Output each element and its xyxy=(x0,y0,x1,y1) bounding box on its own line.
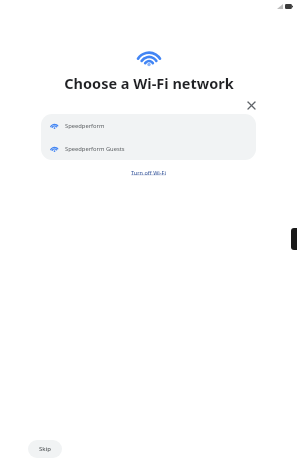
staticText: Turn off Wi-Fi xyxy=(131,169,166,176)
staticText: Speedperform Guests xyxy=(65,145,125,153)
button[interactable]: Turn off Wi-Fi xyxy=(125,167,172,178)
button[interactable]: Speedperform xyxy=(41,114,256,137)
staticText: Skip xyxy=(39,445,51,453)
button[interactable]: Speedperform Guests xyxy=(41,137,256,160)
staticText: Choose a Wi-Fi network xyxy=(64,73,234,93)
button[interactable]: Close xyxy=(244,98,258,112)
staticText: Speedperform xyxy=(65,122,105,130)
button[interactable]: Skip xyxy=(28,440,62,458)
